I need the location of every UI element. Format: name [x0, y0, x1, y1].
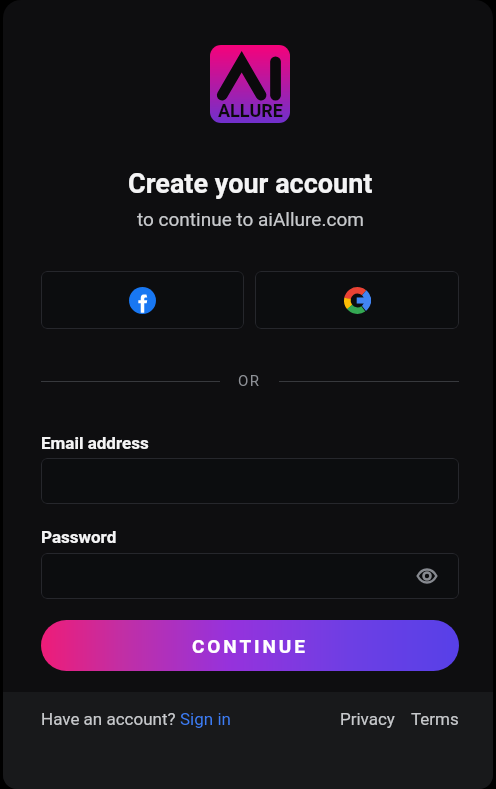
staticText: Create your account [128, 168, 373, 200]
staticText: CONTINUE [192, 635, 308, 657]
button[interactable]: Have an account? [41, 709, 231, 729]
staticText: Sign in [180, 709, 231, 729]
staticText: Have an account? [41, 709, 180, 729]
button[interactable]: Privacy [340, 709, 395, 729]
staticText: Email address [41, 433, 459, 453]
staticText: OR [238, 372, 261, 390]
button[interactable] [41, 458, 459, 504]
button[interactable]: Terms [411, 709, 459, 729]
staticText: Password [41, 527, 459, 547]
button[interactable]: Show password [41, 553, 459, 599]
button[interactable]: CONTINUE [41, 620, 459, 671]
button[interactable]: Sign up with Facebook [41, 271, 244, 329]
staticText: ALLURE [218, 100, 283, 121]
button[interactable]: Sign up with Google [255, 271, 459, 329]
staticText: to continue to aiAllure.com [137, 208, 364, 230]
button[interactable]: Show password [415, 564, 439, 588]
